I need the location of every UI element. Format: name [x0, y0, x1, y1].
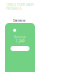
staticText: TRACK YOUR DAILY PROGRESS: [6, 2, 34, 10]
staticText: Overview: [13, 18, 25, 22]
staticText: Balance: [14, 35, 26, 39]
staticText: 1,240: [15, 39, 24, 43]
